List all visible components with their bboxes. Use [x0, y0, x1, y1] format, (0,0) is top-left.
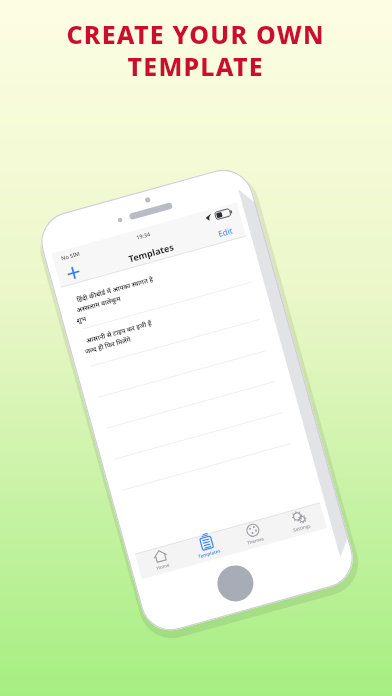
button[interactable]: Home button: [94, 607, 144, 657]
button[interactable]: Themes: [138, 549, 192, 591]
button[interactable]: Add template: [135, 196, 171, 224]
button[interactable]: Templates: [84, 556, 140, 598]
button[interactable]: Settings: [190, 543, 248, 585]
